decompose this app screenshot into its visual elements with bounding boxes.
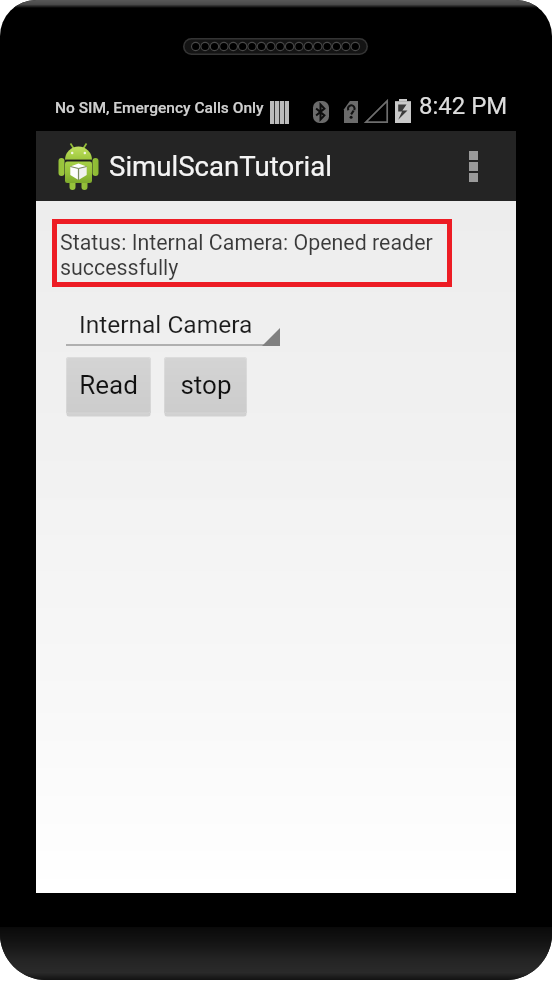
button[interactable]: More options xyxy=(448,131,498,201)
staticText: 8:42 PM xyxy=(419,92,508,120)
button[interactable]: Read xyxy=(66,357,151,415)
staticText: Read xyxy=(79,370,138,400)
staticText: stop xyxy=(180,370,232,400)
button[interactable]: Internal Camera xyxy=(66,301,280,347)
staticText: Internal Camera xyxy=(79,310,253,339)
button[interactable]: stop xyxy=(164,357,247,415)
staticText: SimulScanTutorial xyxy=(109,150,332,182)
button[interactable]: SimulScanTutorial xyxy=(58,142,332,190)
staticText: No SIM, Emergency Calls Only xyxy=(55,99,264,117)
staticText: Status: Internal Camera: Opened reader s… xyxy=(60,230,442,280)
